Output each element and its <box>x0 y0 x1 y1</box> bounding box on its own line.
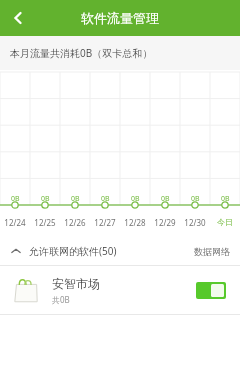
staticText: 0B <box>71 194 80 204</box>
staticText: 12/28 <box>124 217 146 228</box>
staticText: 0B <box>191 194 200 204</box>
button[interactable]: 允许联网的软件(50) <box>0 237 240 265</box>
button[interactable]: Back <box>0 0 36 36</box>
staticText: 12/25 <box>34 217 56 228</box>
staticText: 0B <box>101 194 110 204</box>
staticText: 0B <box>11 194 20 204</box>
staticText: 0B <box>131 194 140 204</box>
staticText: 0B <box>161 194 170 204</box>
staticText: 今日 <box>217 217 233 227</box>
staticText: 12/27 <box>94 217 116 228</box>
staticText: 数据网络 <box>194 246 230 257</box>
staticText: 0B <box>41 194 50 204</box>
staticText: 安智市场 <box>52 276 100 291</box>
staticText: 共0B <box>52 294 70 305</box>
staticText: 0B <box>221 194 230 204</box>
staticText: 允许联网的软件(50) <box>29 244 117 258</box>
staticText: 12/29 <box>154 217 176 228</box>
staticText: 12/30 <box>184 217 206 228</box>
button[interactable]: 安智市场 <box>0 266 240 314</box>
staticText: 软件流量管理 <box>81 10 159 26</box>
staticText: 本月流量共消耗0B（双卡总和） <box>10 46 153 60</box>
button[interactable]: Toggle network for 安智市场 <box>196 282 226 299</box>
staticText: 12/26 <box>64 217 86 228</box>
staticText: 12/24 <box>4 217 26 228</box>
